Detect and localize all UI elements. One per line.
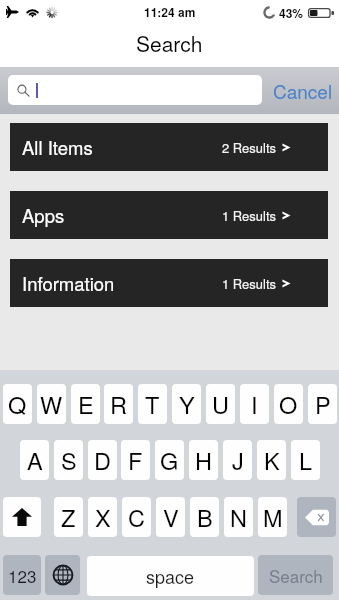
staticText: K (264, 443, 280, 477)
staticText: E (78, 387, 94, 421)
staticText: 2 Results (222, 138, 277, 157)
button[interactable]: V (156, 497, 185, 537)
staticText: H (195, 443, 212, 477)
staticText: R (110, 387, 127, 421)
button[interactable]: L (291, 440, 320, 480)
staticText: 1 Results (222, 206, 277, 225)
button[interactable]: H (189, 440, 218, 480)
staticText: B (197, 500, 213, 534)
staticText: F (128, 443, 143, 477)
button[interactable]: J (223, 440, 252, 480)
staticText: V (163, 500, 179, 534)
staticText: X (95, 500, 111, 534)
staticText: space (146, 563, 195, 589)
button[interactable]: Apps (10, 191, 328, 239)
staticText: O (279, 387, 298, 421)
staticText: M (263, 500, 283, 534)
staticText: I (251, 387, 258, 421)
staticText: T (145, 387, 160, 421)
button[interactable]: S (54, 440, 83, 480)
button[interactable]: Search (258, 555, 333, 595)
button[interactable]: W (37, 384, 66, 424)
button[interactable]: U (206, 384, 235, 424)
button[interactable]: K (257, 440, 286, 480)
button[interactable]: X (88, 497, 117, 537)
button[interactable]: F (121, 440, 150, 480)
button[interactable]: T (138, 384, 167, 424)
button[interactable]: N (224, 497, 253, 537)
button[interactable]: E (71, 384, 100, 424)
staticText: Search (269, 563, 323, 587)
staticText: J (232, 443, 244, 477)
button[interactable]: G (155, 440, 184, 480)
staticText: 43% (279, 4, 304, 21)
staticText: 123 (8, 563, 37, 587)
staticText: 11:24 am (144, 3, 196, 20)
staticText: Y (179, 387, 195, 421)
staticText: P (315, 387, 331, 421)
staticText: U (212, 387, 229, 421)
button[interactable]: C (122, 497, 151, 537)
button[interactable]: Y (172, 384, 201, 424)
staticText: Z (61, 500, 76, 534)
button[interactable]: Change keyboard language (45, 555, 80, 595)
button[interactable]: P (308, 384, 337, 424)
staticText: Search (136, 28, 203, 58)
button[interactable]: R (104, 384, 133, 424)
button[interactable]: 123 (3, 555, 41, 595)
button[interactable]: Information (10, 259, 328, 307)
button[interactable]: space (87, 556, 254, 596)
staticText: N (230, 500, 247, 534)
button[interactable]: I (240, 384, 269, 424)
button[interactable]: O (274, 384, 303, 424)
staticText: G (160, 443, 179, 477)
button[interactable]: Shift (3, 497, 41, 537)
button[interactable]: B (190, 497, 219, 537)
staticText: L (299, 443, 313, 477)
staticText: W (40, 387, 63, 421)
staticText: Apps (22, 202, 65, 228)
button[interactable]: Backspace (297, 497, 336, 537)
staticText: Cancel (273, 77, 333, 104)
staticText: 1 Results (222, 274, 277, 293)
button[interactable]: Q (3, 384, 32, 424)
staticText: S (61, 443, 77, 477)
staticText: A (27, 443, 43, 477)
button[interactable]: M (258, 497, 287, 537)
button[interactable]: Z (54, 497, 83, 537)
button[interactable]: All Items (10, 123, 328, 171)
button[interactable]: Cancel (266, 73, 339, 107)
staticText: Information (22, 270, 115, 296)
button[interactable] (8, 75, 262, 105)
button[interactable]: D (88, 440, 117, 480)
staticText: All Items (22, 134, 93, 160)
staticText: Q (8, 387, 27, 421)
staticText: D (94, 443, 111, 477)
button[interactable]: A (20, 440, 49, 480)
staticText: C (128, 500, 145, 534)
